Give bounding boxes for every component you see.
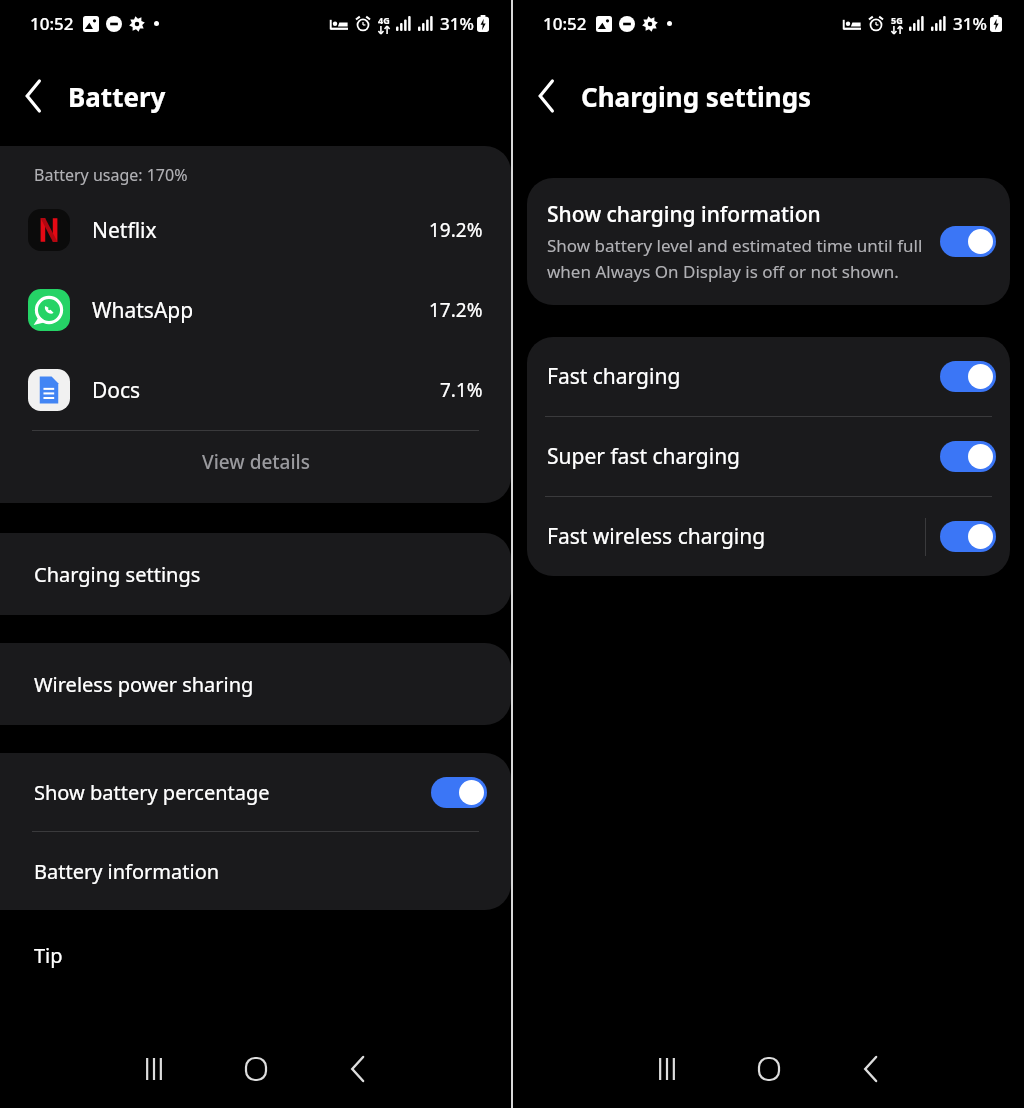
button[interactable]: Navigate up	[0, 62, 68, 130]
button[interactable]: Toggle on	[940, 441, 996, 472]
button[interactable]: Toggle on	[431, 777, 487, 808]
button[interactable]: Show battery percentage	[0, 753, 511, 831]
staticText: 10:52	[30, 12, 74, 35]
button[interactable]: Docs	[0, 350, 511, 430]
button[interactable]: Recent apps	[103, 1030, 205, 1108]
staticText: Fast charging	[547, 362, 940, 391]
staticText: 10:52	[543, 12, 587, 35]
button[interactable]: Fast charging	[527, 337, 1010, 416]
button[interactable]: Charging settings	[0, 533, 511, 615]
button[interactable]: View details	[0, 431, 511, 493]
button[interactable]: Toggle on	[940, 226, 996, 257]
staticText: 31%	[440, 12, 474, 35]
staticText: Netflix	[92, 216, 429, 245]
button[interactable]: Fast wireless charging	[527, 497, 1010, 576]
staticText: 7.1%	[440, 377, 483, 403]
button[interactable]: Netflix	[0, 190, 511, 270]
staticText: Wireless power sharing	[34, 671, 254, 698]
staticText: Fast wireless charging	[547, 522, 925, 551]
staticText: WhatsApp	[92, 296, 429, 325]
button[interactable]: Super fast charging	[527, 417, 1010, 496]
button[interactable]: Show charging information	[527, 178, 1010, 305]
staticText: 19.2%	[429, 217, 483, 243]
staticText: Battery	[68, 79, 166, 114]
button[interactable]: Back	[307, 1030, 409, 1108]
staticText: Charging settings	[581, 79, 812, 114]
staticText: 4G	[378, 14, 390, 26]
staticText: Battery information	[34, 858, 220, 885]
staticText: View details	[202, 449, 310, 475]
staticText: Show charging information	[547, 200, 821, 229]
staticText: Tip	[34, 942, 63, 969]
staticText: Battery usage: 170%	[34, 164, 188, 186]
button[interactable]: Recent apps	[616, 1030, 718, 1108]
staticText: Docs	[92, 376, 440, 405]
staticText: Super fast charging	[547, 442, 940, 471]
button[interactable]: Toggle on	[940, 521, 996, 552]
staticText: 17.2%	[429, 297, 483, 323]
button[interactable]: Toggle on	[940, 361, 996, 392]
button[interactable]: WhatsApp	[0, 270, 511, 350]
staticText: Charging settings	[34, 561, 201, 588]
button[interactable]: Wireless power sharing	[0, 643, 511, 725]
staticText: 5G	[891, 14, 903, 26]
button[interactable]: Back	[820, 1030, 922, 1108]
staticText: Show battery level and estimated time un…	[547, 234, 928, 283]
button[interactable]: Home	[205, 1030, 307, 1108]
staticText: 31%	[953, 12, 987, 35]
button[interactable]: Navigate up	[513, 62, 581, 130]
button[interactable]: Home	[718, 1030, 820, 1108]
staticText: Show battery percentage	[34, 779, 431, 806]
button[interactable]: Battery information	[0, 832, 511, 910]
